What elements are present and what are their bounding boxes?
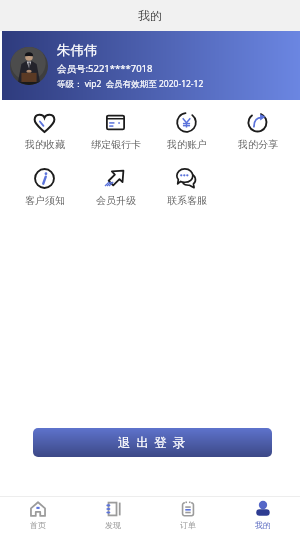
button[interactable]: 订单 xyxy=(150,497,225,533)
staticText: 等级： vip2 会员有效期至 2020-12-12 xyxy=(57,78,204,90)
button[interactable]: 首页 xyxy=(0,497,75,533)
button[interactable]: Member upgrade xyxy=(80,168,151,207)
button[interactable]: My share xyxy=(222,112,293,151)
staticText: 绑定银行卡 xyxy=(91,138,141,151)
button[interactable]: Contact support xyxy=(151,168,222,207)
button[interactable]: 发现 xyxy=(75,497,150,533)
staticText: 联系客服 xyxy=(167,194,207,207)
staticText: 订单 xyxy=(180,520,196,530)
staticText: 我的 xyxy=(255,520,271,530)
staticText: 会员升级 xyxy=(96,194,136,207)
staticText: 我的分享 xyxy=(238,138,278,151)
staticText: 发现 xyxy=(105,520,121,530)
button[interactable]: My favorites xyxy=(9,112,80,151)
staticText: 朱伟伟 xyxy=(57,42,98,59)
staticText: 我的 xyxy=(138,8,162,23)
button[interactable]: 朱伟伟 xyxy=(2,31,300,100)
staticText: 客户须知 xyxy=(25,194,65,207)
button[interactable]: 退 出 登 录 xyxy=(33,428,272,457)
button[interactable]: My account xyxy=(151,112,222,151)
button[interactable]: Customer notice xyxy=(9,168,80,207)
staticText: 退 出 登 录 xyxy=(118,434,187,451)
staticText: 会员号:5221****7018 xyxy=(57,62,153,75)
button[interactable]: 我的 xyxy=(225,497,300,533)
staticText: 我的收藏 xyxy=(25,138,65,151)
staticText: 我的账户 xyxy=(167,138,207,151)
button[interactable]: Bind bank card xyxy=(80,112,151,151)
staticText: 首页 xyxy=(30,520,46,530)
